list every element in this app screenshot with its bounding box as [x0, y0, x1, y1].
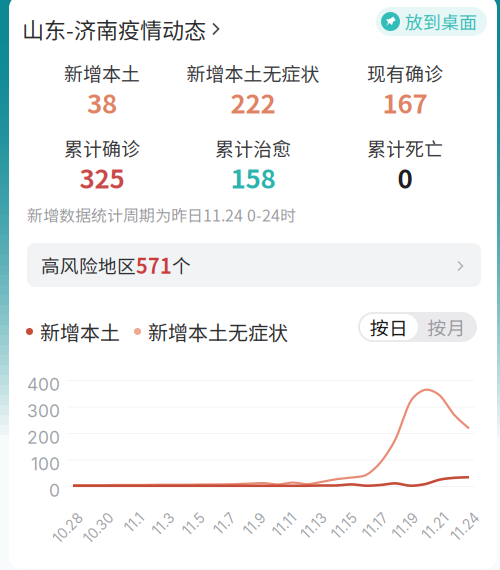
staticText: 11.5	[184, 521, 209, 538]
staticText: 累计治愈	[215, 134, 291, 161]
staticText: 0	[397, 158, 412, 196]
staticText: 新增本土	[40, 317, 120, 346]
staticText: 按日	[370, 313, 408, 340]
staticText: 新增数据统计周期为昨日11.24 0-24时	[27, 203, 296, 226]
staticText: 11.15	[331, 521, 361, 538]
staticText: 11.24	[450, 521, 483, 538]
staticText: 现有确诊	[367, 59, 443, 86]
button[interactable]: 按月	[418, 314, 475, 340]
staticText: 167	[382, 83, 427, 121]
staticText: 新增本土无症状	[148, 317, 288, 346]
staticText: 11.13	[301, 521, 331, 538]
staticText: 325	[79, 158, 124, 196]
button[interactable]: 山东-济南疫情动态	[22, 13, 220, 45]
staticText: 11.21	[421, 521, 452, 538]
staticText: 11.19	[392, 521, 422, 538]
staticText: 11.17	[363, 521, 392, 538]
button[interactable]: 放到桌面	[376, 7, 487, 36]
staticText: 个	[172, 251, 191, 278]
staticText: 571	[136, 250, 172, 279]
staticText: 累计死亡	[367, 134, 443, 161]
staticText: 200	[27, 427, 60, 448]
staticText: 100	[31, 453, 60, 474]
staticText: 0	[49, 480, 60, 501]
staticText: 11.9	[245, 521, 270, 538]
staticText: 158	[230, 158, 275, 196]
staticText: 按月	[427, 313, 465, 340]
staticText: 新增本土无症状	[186, 59, 319, 86]
staticText: 10.30	[81, 521, 117, 538]
staticText: 高风险地区	[41, 251, 136, 278]
staticText: 新增本土	[64, 59, 140, 86]
staticText: 山东-济南疫情动态	[22, 13, 206, 45]
staticText: 11.7	[215, 521, 239, 538]
staticText: 11.3	[153, 521, 178, 538]
staticText: 放到桌面	[405, 8, 477, 35]
button[interactable]: 按日	[360, 314, 418, 340]
staticText: 300	[27, 400, 60, 421]
staticText: 222	[230, 83, 275, 121]
staticText: 11.1	[127, 521, 148, 538]
button[interactable]: 高风险地区	[27, 243, 481, 287]
staticText: 10.28	[51, 521, 87, 538]
staticText: 11.11	[273, 521, 300, 538]
staticText: 累计确诊	[64, 134, 140, 161]
staticText: 400	[27, 374, 60, 395]
staticText: 38	[87, 83, 117, 121]
